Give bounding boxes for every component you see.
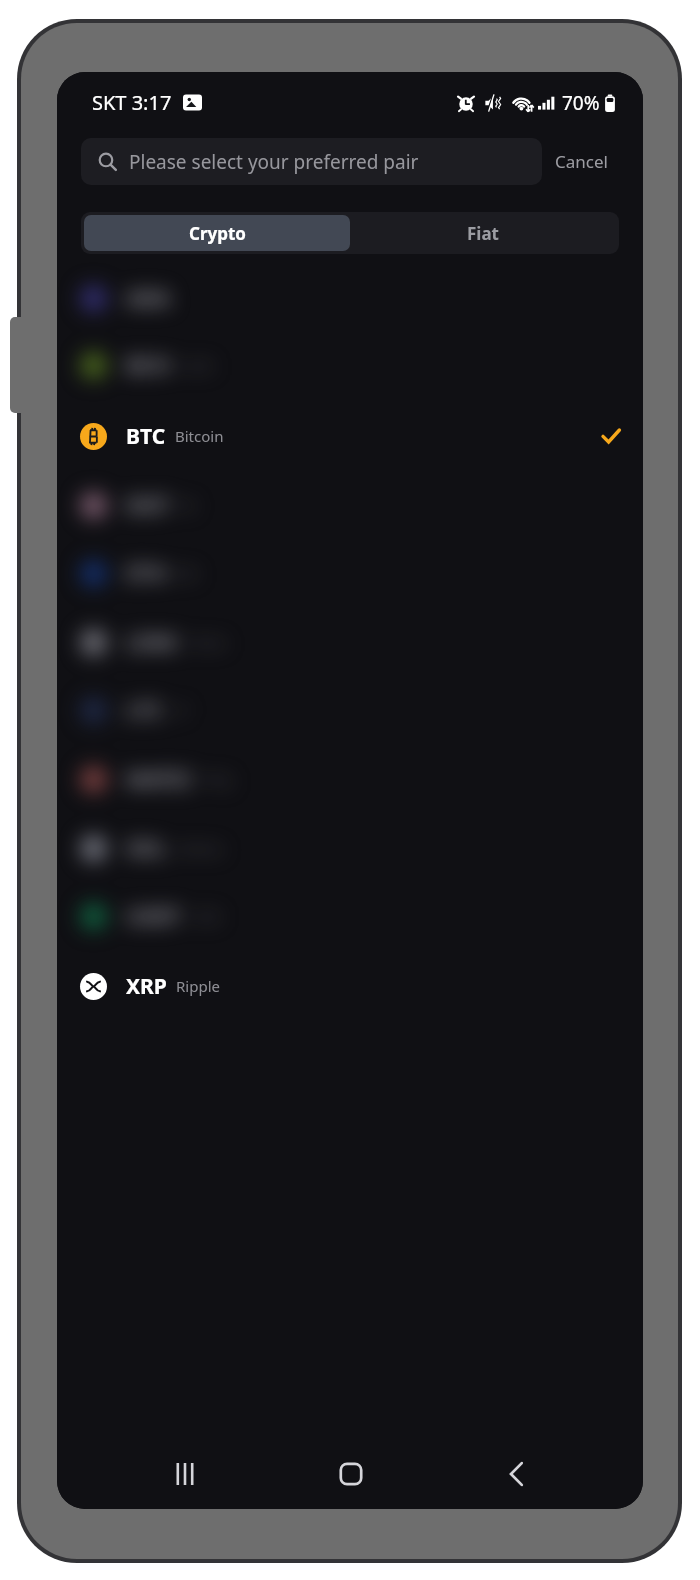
button[interactable]: Home <box>268 1439 433 1509</box>
staticText: Crypto <box>189 222 246 245</box>
staticText: BTC <box>126 422 166 451</box>
staticText: ADA <box>126 284 171 313</box>
staticText: Ripple <box>176 976 220 996</box>
button[interactable]: Recent apps <box>102 1439 268 1509</box>
staticText: Please select your preferred pair <box>129 149 419 175</box>
staticText: BCH <box>126 351 170 380</box>
staticText: LINK <box>126 628 177 657</box>
button[interactable]: Cancel <box>551 142 612 181</box>
staticText: LTC <box>126 696 163 725</box>
button[interactable]: Please select your preferred pair <box>81 138 542 185</box>
staticText: USDT <box>126 902 181 931</box>
button[interactable]: Crypto <box>84 215 350 251</box>
button[interactable]: XRP <box>57 964 643 1008</box>
staticText: MATIC <box>126 765 193 794</box>
staticText: Fiat <box>467 222 499 245</box>
button[interactable]: Fiat <box>350 215 616 251</box>
staticText: 70% <box>562 90 600 116</box>
staticText: XRP <box>126 972 167 1001</box>
staticText: SKT 3:17 <box>92 89 172 116</box>
button[interactable]: BTC <box>57 414 643 458</box>
staticText: Cancel <box>555 150 608 173</box>
button[interactable]: Back <box>433 1439 598 1509</box>
staticText: SOL <box>126 834 166 863</box>
staticText: Bitcoin <box>175 426 224 446</box>
staticText: ETH <box>126 559 166 588</box>
other: Selected <box>601 426 621 446</box>
staticText: DOT <box>126 491 170 520</box>
